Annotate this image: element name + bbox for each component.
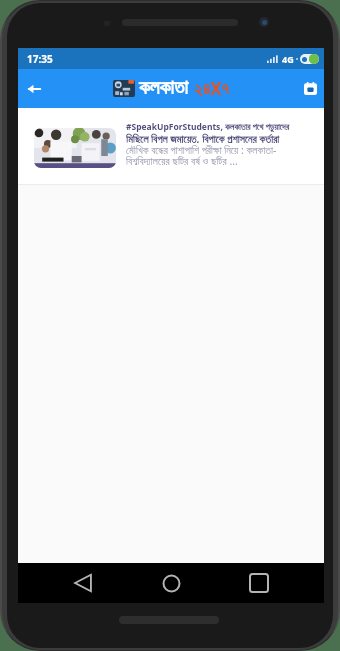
button[interactable]: Back <box>18 69 49 108</box>
button[interactable]: Home <box>127 563 215 603</box>
button[interactable]: Recents <box>215 563 303 603</box>
button[interactable]: #SpeakUpForStudents, কলকাতার পথে পড়ুয়া… <box>18 108 324 185</box>
staticText: ২৪X৭ <box>194 77 230 100</box>
staticText: কলকাতা <box>139 79 188 98</box>
staticText: 17:35 <box>27 52 53 66</box>
staticText: #SpeakUpForStudents, কলকাতার পথে পড়ুয়া… <box>126 121 290 132</box>
staticText: মিছিলে বিপুল জমায়েত, বিপাকে প্রশাসনের ক… <box>126 132 280 143</box>
button[interactable]: Calendar <box>297 69 324 108</box>
staticText: 4G <box>282 53 294 65</box>
staticText: মৌখিক বন্ধের পাশাপাশি পরীক্ষা নিয়ে : কল… <box>126 143 277 154</box>
staticText: বিশ্ববিদ্যালয়ের ছুটির বর্ষ ও ছুটির ... <box>126 154 238 165</box>
button[interactable]: Back <box>39 563 127 603</box>
